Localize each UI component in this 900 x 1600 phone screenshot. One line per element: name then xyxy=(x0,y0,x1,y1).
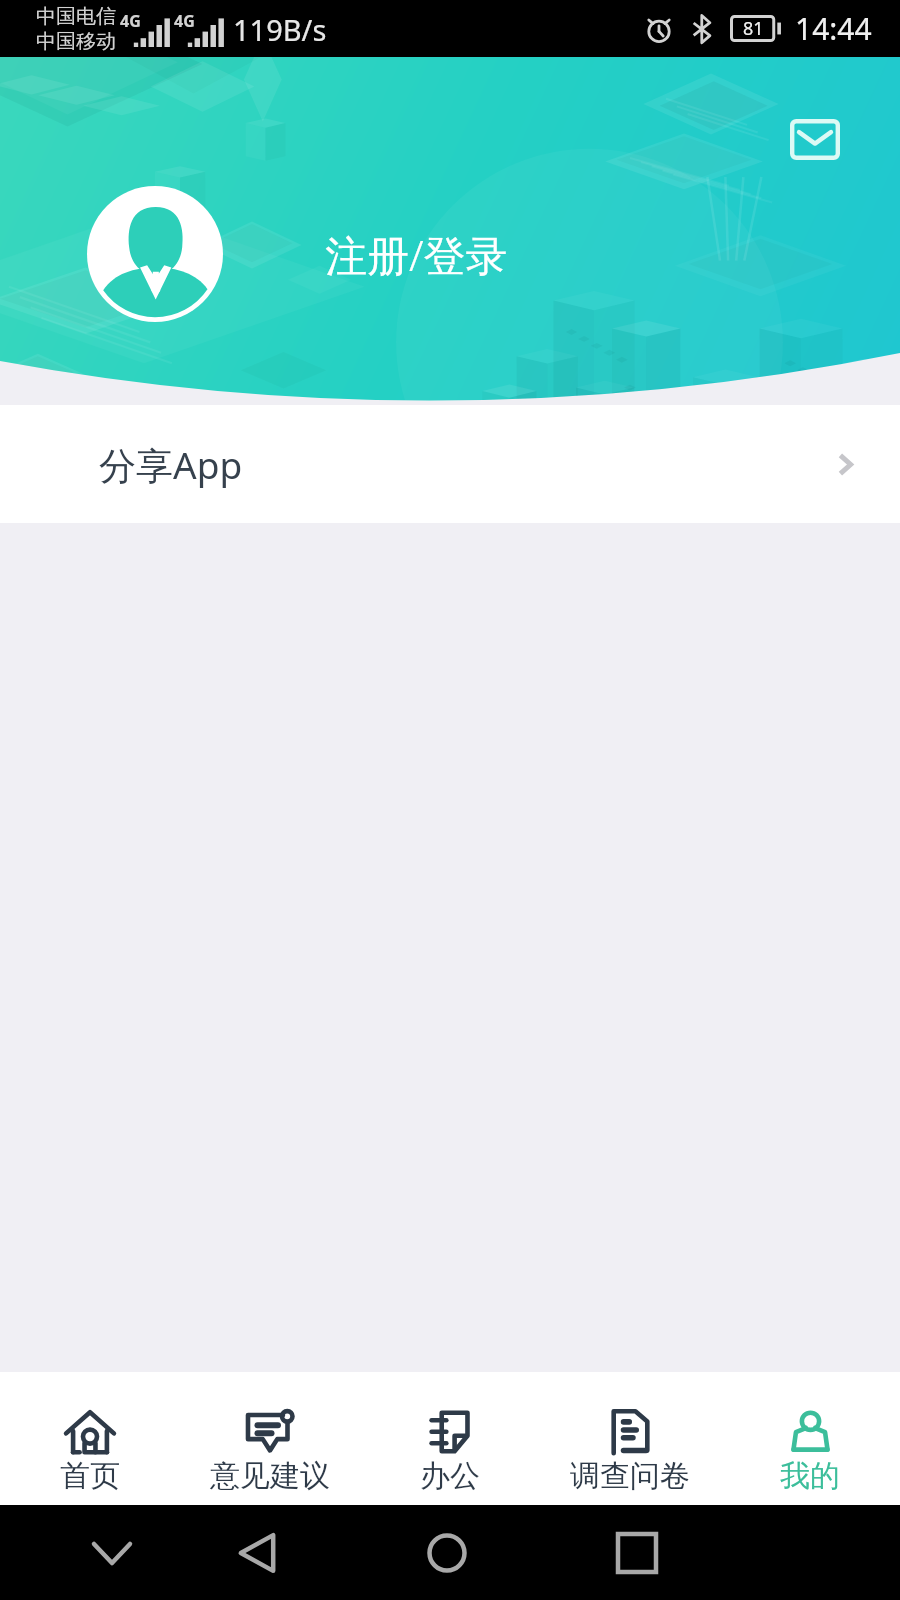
staticText: 4G xyxy=(120,10,141,32)
button[interactable]: 分享App xyxy=(0,405,900,523)
staticText: 办公 xyxy=(420,1457,480,1495)
button[interactable]: 调查问卷 xyxy=(540,1372,720,1505)
button[interactable]: Profile xyxy=(87,186,223,322)
staticText: 81 xyxy=(743,16,764,41)
staticText: 首页 xyxy=(60,1457,120,1495)
button[interactable]: 我的 xyxy=(720,1372,900,1505)
staticText: 中国电信 xyxy=(36,4,116,29)
staticText: 我的 xyxy=(780,1457,840,1495)
staticText: 分享App xyxy=(99,439,243,490)
staticText: 中国移动 xyxy=(36,29,116,54)
button[interactable]: Recents xyxy=(605,1521,669,1585)
staticText: 意见建议 xyxy=(210,1457,330,1495)
staticText: 119B/s xyxy=(233,10,327,49)
button[interactable]: Messages xyxy=(786,111,844,167)
button[interactable]: Home xyxy=(415,1521,479,1585)
staticText: 4G xyxy=(174,10,195,32)
button[interactable]: 意见建议 xyxy=(180,1372,360,1505)
staticText: 调查问卷 xyxy=(570,1457,690,1495)
staticText: 14:44 xyxy=(795,8,872,49)
button[interactable]: 办公 xyxy=(360,1372,540,1505)
button[interactable]: Back xyxy=(225,1521,289,1585)
staticText: 注册/登录 xyxy=(325,226,508,283)
button[interactable]: 首页 xyxy=(0,1372,180,1505)
button[interactable]: Hide xyxy=(80,1521,144,1585)
